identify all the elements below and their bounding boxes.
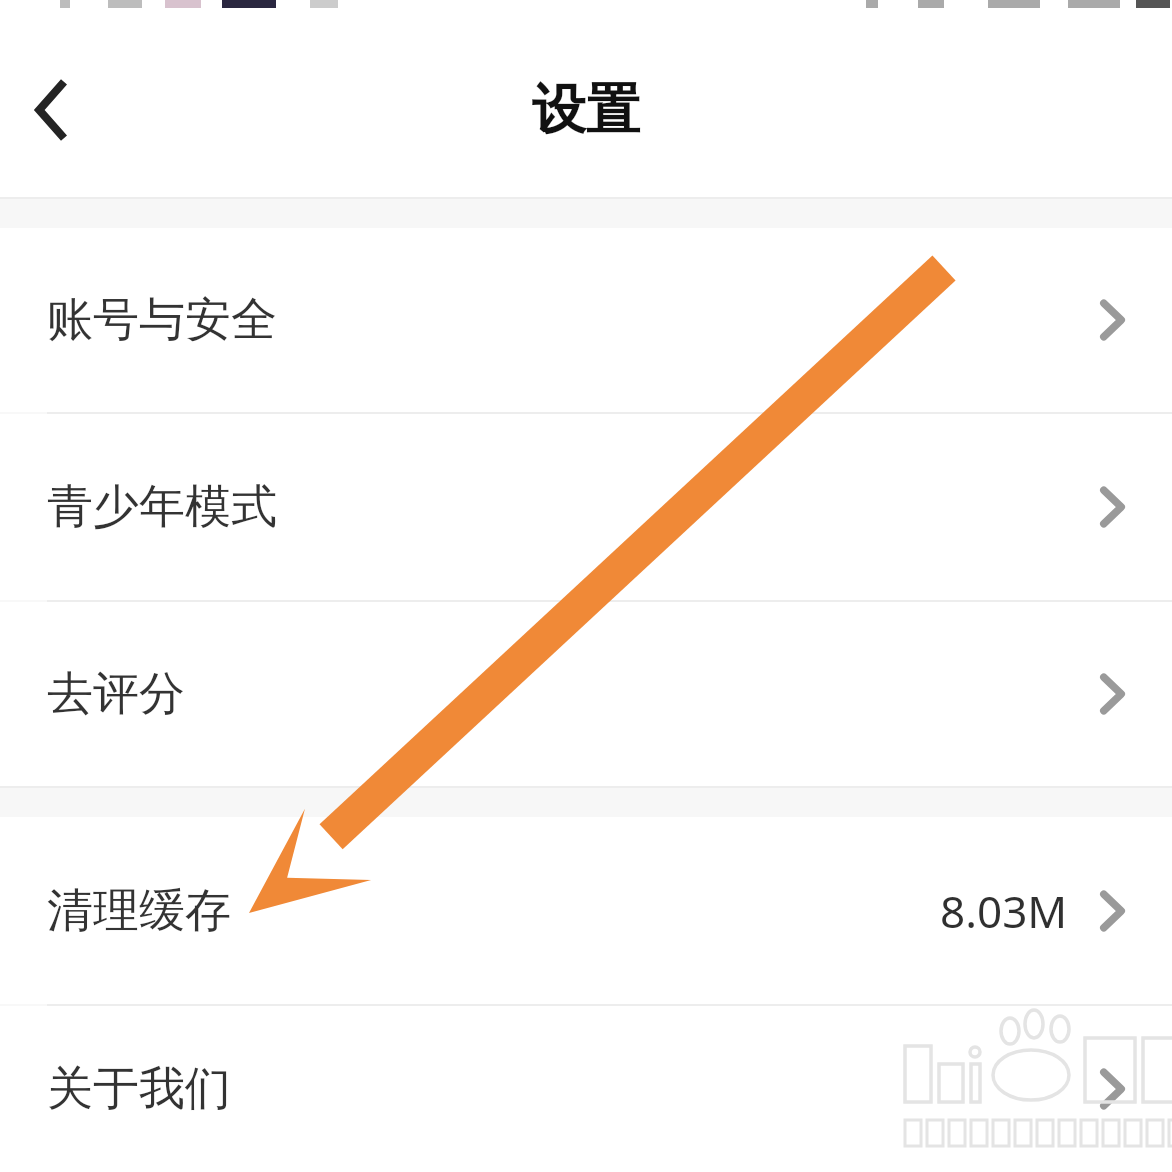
button[interactable]: 青少年模式 <box>0 414 1172 600</box>
staticText: 清理缓存 <box>47 882 231 940</box>
button[interactable]: Back <box>6 64 98 156</box>
staticText: 设置 <box>0 76 1172 144</box>
staticText: 8.03M <box>940 881 1068 941</box>
button[interactable]: 关于我们 <box>0 1006 1172 1172</box>
staticText: 关于我们 <box>47 1060 231 1118</box>
staticText: 去评分 <box>47 665 185 723</box>
button[interactable]: 去评分 <box>0 602 1172 786</box>
staticText: 青少年模式 <box>47 478 277 536</box>
button[interactable]: 账号与安全 <box>0 228 1172 412</box>
staticText: 账号与安全 <box>47 291 277 349</box>
button[interactable]: 清理缓存 <box>0 817 1172 1004</box>
